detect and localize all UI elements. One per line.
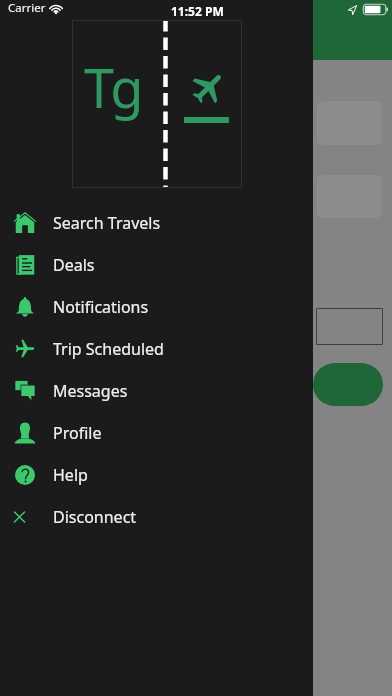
- button[interactable]: Deals: [0, 244, 313, 286]
- button[interactable]: Trip Scheduled: [0, 328, 313, 370]
- staticText: Messages: [53, 380, 128, 402]
- staticText: Disconnect: [53, 506, 137, 528]
- button[interactable]: Disconnect: [0, 496, 313, 538]
- button[interactable]: Notifications: [0, 286, 313, 328]
- staticText: Deals: [53, 254, 95, 276]
- staticText: Trip Scheduled: [53, 338, 164, 360]
- button[interactable]: Search Travels: [0, 202, 313, 244]
- button[interactable]: Messages: [0, 370, 313, 412]
- staticText: Tg: [84, 50, 144, 124]
- staticText: Carrier: [8, 0, 46, 16]
- staticText: 11:52 PM: [171, 3, 224, 19]
- staticText: Notifications: [53, 296, 149, 318]
- button[interactable]: Help: [0, 454, 313, 496]
- button[interactable]: Search: [313, 363, 383, 406]
- staticText: Help: [53, 464, 88, 486]
- staticText: Search Travels: [53, 212, 161, 234]
- staticText: Profile: [53, 422, 102, 444]
- button[interactable]: Profile: [0, 412, 313, 454]
